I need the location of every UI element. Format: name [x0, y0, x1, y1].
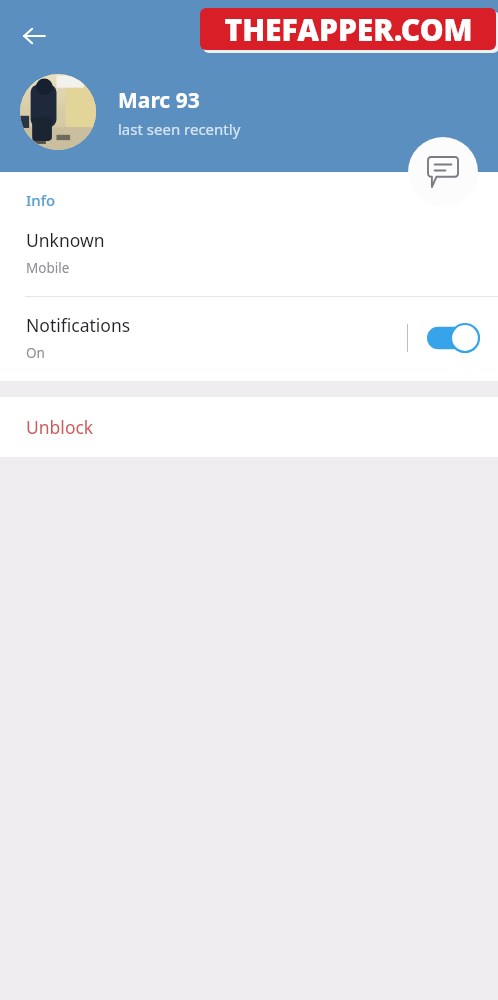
staticText: Notifications	[26, 313, 131, 337]
staticText: Marc 93	[118, 86, 200, 115]
button[interactable]: Notifications	[0, 313, 498, 362]
button[interactable]: Notifications toggle	[426, 318, 478, 358]
staticText: Unknown	[26, 228, 105, 252]
button[interactable]: Back	[10, 12, 58, 60]
staticText: Info	[26, 190, 56, 210]
button[interactable]: Unblock	[0, 397, 498, 457]
staticText: THEFAPPER.COM	[224, 9, 473, 50]
button[interactable]: Unknown	[0, 228, 498, 277]
staticText: Unblock	[26, 415, 94, 439]
staticText: last seen recently	[118, 119, 241, 139]
staticText: Mobile	[26, 259, 70, 277]
button[interactable]: Send message	[408, 137, 478, 207]
staticText: On	[26, 344, 45, 362]
